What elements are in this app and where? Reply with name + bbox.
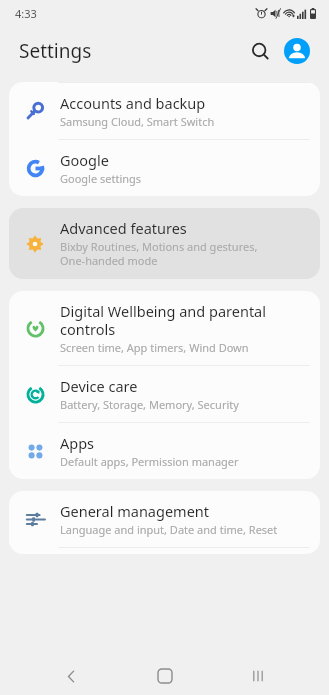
staticText: Battery, Storage, Memory, Security xyxy=(60,397,239,412)
staticText: 4:33 xyxy=(15,6,37,21)
staticText: Bixby Routines, Motions and gestures, On… xyxy=(60,239,258,269)
staticText: Screen time, App timers, Wind Down xyxy=(60,340,249,355)
button[interactable]: Search xyxy=(243,34,277,68)
button[interactable]: Home xyxy=(143,657,187,695)
button[interactable]: General management xyxy=(9,491,320,547)
staticText: Language and input, Date and time, Reset xyxy=(60,522,278,537)
staticText: Samsung Cloud, Smart Switch xyxy=(60,114,215,129)
button[interactable]: Account xyxy=(280,34,314,68)
button[interactable]: Apps xyxy=(9,423,320,479)
button[interactable]: Advanced features xyxy=(9,208,320,279)
staticText: Advanced features xyxy=(60,218,187,238)
staticText: Digital Wellbeing and parental controls xyxy=(60,301,266,339)
staticText: Settings xyxy=(19,38,92,64)
button[interactable]: Google xyxy=(9,140,320,196)
button[interactable]: Recent apps xyxy=(236,657,280,695)
staticText: Google settings xyxy=(60,171,142,186)
button[interactable]: Device care xyxy=(9,366,320,422)
staticText: Google xyxy=(60,150,109,170)
button[interactable]: Back xyxy=(49,657,93,695)
button[interactable]: Accounts and backup xyxy=(9,83,320,139)
staticText: Accounts and backup xyxy=(60,93,206,113)
staticText: Apps xyxy=(60,433,95,453)
staticText: Device care xyxy=(60,376,138,396)
button[interactable]: Digital Wellbeing and parental controls xyxy=(9,291,320,365)
staticText: General management xyxy=(60,501,210,521)
staticText: Default apps, Permission manager xyxy=(60,454,239,469)
